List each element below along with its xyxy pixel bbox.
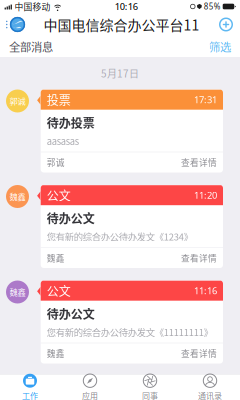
staticText: 筛选 <box>209 38 231 55</box>
staticText: 查看详情 <box>181 347 217 359</box>
staticText: 您有新的综合办公待办发文《11111111》 <box>47 325 213 339</box>
button[interactable]: 应用 <box>60 374 120 400</box>
staticText: aasasas <box>47 134 79 148</box>
staticText: 待办投票 <box>47 114 95 131</box>
staticText: 待办公文 <box>47 209 95 227</box>
button[interactable]: Workspace <box>0 13 31 36</box>
button[interactable]: 工作 <box>0 374 60 400</box>
button[interactable]: Add <box>212 13 240 36</box>
staticText: 魏鑫 <box>9 190 25 202</box>
staticText: 您有新的综合办公待办发文《1234》 <box>47 230 193 243</box>
staticText: 公文 <box>47 186 71 204</box>
button[interactable]: 同事 <box>120 374 180 400</box>
staticText: 郭诚 <box>9 95 25 107</box>
staticText: 投票 <box>47 91 71 108</box>
staticText: 11:16 <box>194 284 217 297</box>
staticText: 魏鑫 <box>47 251 65 264</box>
staticText: 17:31 <box>194 93 217 106</box>
staticText: 应用 <box>82 390 98 400</box>
staticText: 魏鑫 <box>9 286 25 298</box>
button[interactable]: 公文 <box>41 280 223 363</box>
button[interactable]: 公文 <box>41 185 223 268</box>
staticText: 魏鑫 <box>47 347 65 359</box>
staticText: 11:20 <box>194 189 217 201</box>
staticText: 通讯录 <box>198 390 222 400</box>
staticText: 同事 <box>142 390 158 400</box>
button[interactable]: 投票 <box>41 89 223 172</box>
staticText: 待办公文 <box>47 305 95 322</box>
staticText: 10:16 <box>115 0 138 13</box>
staticText: 公文 <box>47 282 71 299</box>
button[interactable]: 筛选 <box>209 38 231 55</box>
staticText: 查看详情 <box>181 156 217 168</box>
staticText: 5月17日 <box>101 66 139 80</box>
button[interactable]: 通讯录 <box>180 374 240 400</box>
staticText: 85% <box>204 1 221 12</box>
staticText: 查看详情 <box>181 251 217 264</box>
staticText: 郭诚 <box>47 156 65 168</box>
staticText: 工作 <box>22 390 38 400</box>
staticText: 中国移动 <box>14 0 50 13</box>
staticText: 中国电信综合办公平台11 <box>43 14 199 35</box>
staticText: 全部消息 <box>9 38 53 55</box>
